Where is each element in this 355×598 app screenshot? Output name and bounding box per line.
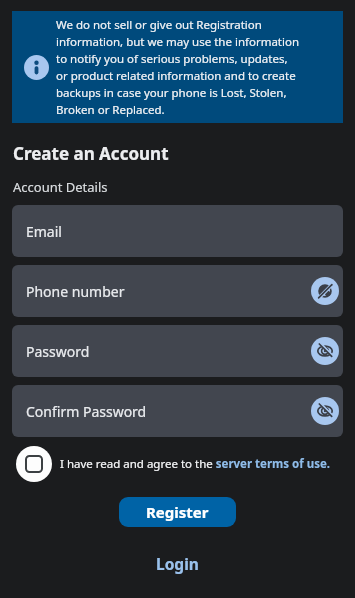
staticText: Email	[26, 222, 62, 241]
staticText: Account Details	[13, 178, 108, 196]
staticText: Password	[26, 342, 90, 361]
button[interactable]: Login	[156, 553, 199, 574]
button[interactable]: Phone number	[12, 265, 343, 317]
staticText: Phone number	[26, 282, 125, 301]
button[interactable]: Email	[12, 205, 343, 257]
button[interactable]	[16, 446, 52, 482]
button[interactable]	[311, 397, 339, 425]
button[interactable]: I have read and agree to the server term…	[60, 456, 331, 472]
button[interactable]: Register	[119, 497, 236, 527]
button[interactable]	[311, 337, 339, 365]
button[interactable]	[311, 277, 339, 305]
staticText: Register	[146, 502, 209, 522]
button[interactable]: Confirm Password	[12, 385, 343, 437]
staticText: Confirm Password	[26, 402, 147, 421]
staticText: We do not sell or give out Registration …	[56, 17, 300, 118]
staticText: Create an Account	[13, 142, 169, 165]
button[interactable]: Password	[12, 325, 343, 377]
